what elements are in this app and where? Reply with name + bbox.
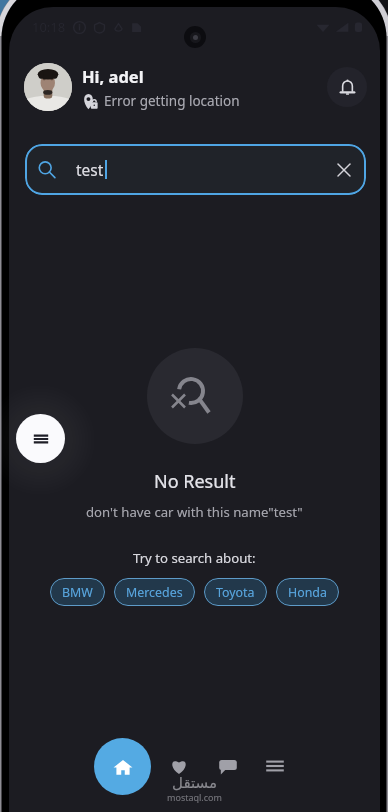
staticText: mostaql.com [167, 791, 222, 803]
button[interactable]: More [253, 744, 297, 788]
button[interactable]: Favorites [157, 744, 201, 788]
staticText: don't have car with this name"test" [86, 503, 303, 521]
button[interactable]: Messages [206, 744, 250, 788]
button[interactable]: Profile [24, 63, 72, 111]
staticText: Try to search about: [133, 549, 256, 567]
button[interactable]: Menu [16, 414, 65, 463]
button[interactable]: test [25, 144, 366, 195]
staticText: BMW [62, 584, 93, 601]
staticText: Error getting location [104, 92, 240, 110]
button[interactable]: Mercedes [114, 578, 195, 606]
button[interactable]: Clear search [333, 159, 355, 181]
staticText: Toyota [216, 584, 255, 601]
button[interactable]: Honda [276, 578, 339, 606]
staticText: Honda [288, 584, 327, 601]
button[interactable]: Home [94, 738, 151, 795]
button[interactable]: Notifications [327, 67, 367, 107]
staticText: مستقل [172, 774, 217, 791]
staticText: test [76, 159, 104, 180]
staticText: Hi, adel [82, 65, 144, 87]
staticText: Mercedes [126, 584, 183, 601]
staticText: No Result [154, 469, 236, 494]
button[interactable]: BMW [50, 578, 105, 606]
button[interactable]: Toyota [204, 578, 267, 606]
